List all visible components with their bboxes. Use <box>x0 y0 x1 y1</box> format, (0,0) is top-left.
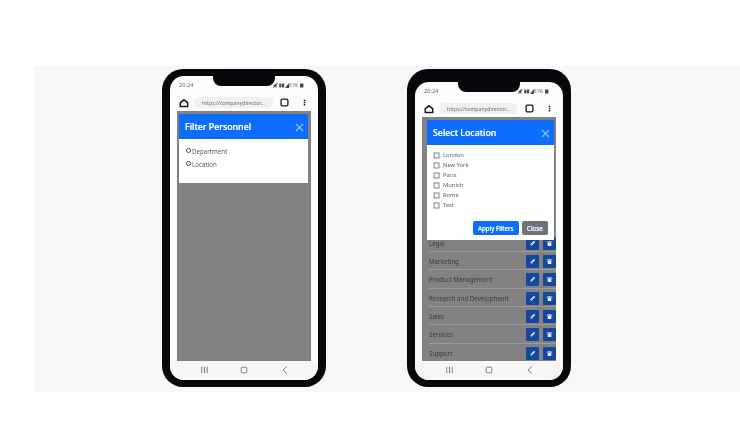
staticText: Marketing <box>429 257 459 265</box>
button[interactable]: Services <box>429 325 556 343</box>
button[interactable]: Edit Research and Development <box>526 292 539 305</box>
button[interactable]: Department <box>186 144 308 157</box>
staticText: 81% <box>289 82 299 88</box>
button[interactable]: More options <box>545 104 554 113</box>
button[interactable]: Rome <box>434 190 554 200</box>
button[interactable]: Tabs <box>280 98 289 107</box>
button[interactable]: Location <box>186 157 308 170</box>
button[interactable]: Home <box>237 363 251 377</box>
staticText: Sales <box>429 312 444 320</box>
staticText: Location <box>192 160 217 168</box>
button[interactable]: Recent apps <box>197 363 211 377</box>
button[interactable]: Tabs <box>525 104 534 113</box>
button[interactable]: Close dialog <box>293 121 305 133</box>
staticText: Select Location <box>433 127 497 139</box>
button[interactable]: Munich <box>434 180 554 190</box>
button[interactable]: Recent apps <box>442 363 456 377</box>
staticText: Product Management <box>429 275 493 283</box>
button[interactable]: London <box>434 150 554 160</box>
staticText: London <box>443 151 464 159</box>
button[interactable]: Edit Support <box>526 347 539 360</box>
staticText: Paris <box>443 171 457 179</box>
staticText: Support <box>429 349 453 357</box>
button[interactable]: Delete Support <box>543 347 556 360</box>
button[interactable]: Back <box>523 363 537 377</box>
button[interactable]: Delete Product Management <box>543 273 556 286</box>
button[interactable]: Edit Sales <box>526 310 539 323</box>
staticText: Close <box>527 224 543 232</box>
button[interactable]: New York <box>434 160 554 170</box>
button[interactable]: Sales <box>429 307 556 325</box>
button[interactable]: Back <box>278 363 292 377</box>
button[interactable]: Delete Legal <box>543 237 556 250</box>
staticText: https://companydirector... <box>202 99 265 106</box>
button[interactable]: Edit Legal <box>526 237 539 250</box>
staticText: New York <box>443 161 469 169</box>
staticText: Legal <box>429 239 445 247</box>
button[interactable]: Legal <box>429 234 556 252</box>
staticText: Rome <box>443 191 459 199</box>
staticText: Services <box>429 330 453 338</box>
button[interactable]: Home <box>482 363 496 377</box>
button[interactable]: Delete Marketing <box>543 255 556 268</box>
button[interactable]: Paris <box>434 170 554 180</box>
staticText: 20:24 <box>179 81 194 89</box>
button[interactable]: Support <box>429 344 556 362</box>
button[interactable]: Research and Development <box>429 289 556 307</box>
button[interactable]: Home <box>424 104 434 114</box>
staticText: Apply Filters <box>478 224 514 232</box>
button[interactable]: Marketing <box>429 252 556 270</box>
button[interactable]: Home <box>179 98 189 108</box>
button[interactable]: Delete Research and Development <box>543 292 556 305</box>
button[interactable]: Edit Product Management <box>526 273 539 286</box>
button[interactable]: https://companydirector... <box>194 97 273 108</box>
staticText: Department <box>192 147 228 155</box>
button[interactable]: Apply Filters <box>473 221 519 235</box>
staticText: 81% <box>534 88 544 94</box>
button[interactable]: https://companydirector... <box>439 103 518 114</box>
button[interactable]: Edit Marketing <box>526 255 539 268</box>
staticText: 20:24 <box>424 87 439 95</box>
button[interactable]: Test <box>434 200 554 210</box>
button[interactable]: Delete Sales <box>543 310 556 323</box>
staticText: Test <box>443 201 454 209</box>
button[interactable]: Close <box>522 221 548 235</box>
button[interactable]: More options <box>300 98 309 107</box>
button[interactable]: Close dialog <box>539 127 551 139</box>
staticText: Research and Development <box>429 294 509 302</box>
staticText: Filter Personnel <box>185 121 252 133</box>
button[interactable]: Edit Services <box>526 328 539 341</box>
staticText: Munich <box>443 181 464 189</box>
staticText: https://companydirector... <box>447 105 510 112</box>
button[interactable]: Product Management <box>429 270 556 288</box>
button[interactable]: Delete Services <box>543 328 556 341</box>
